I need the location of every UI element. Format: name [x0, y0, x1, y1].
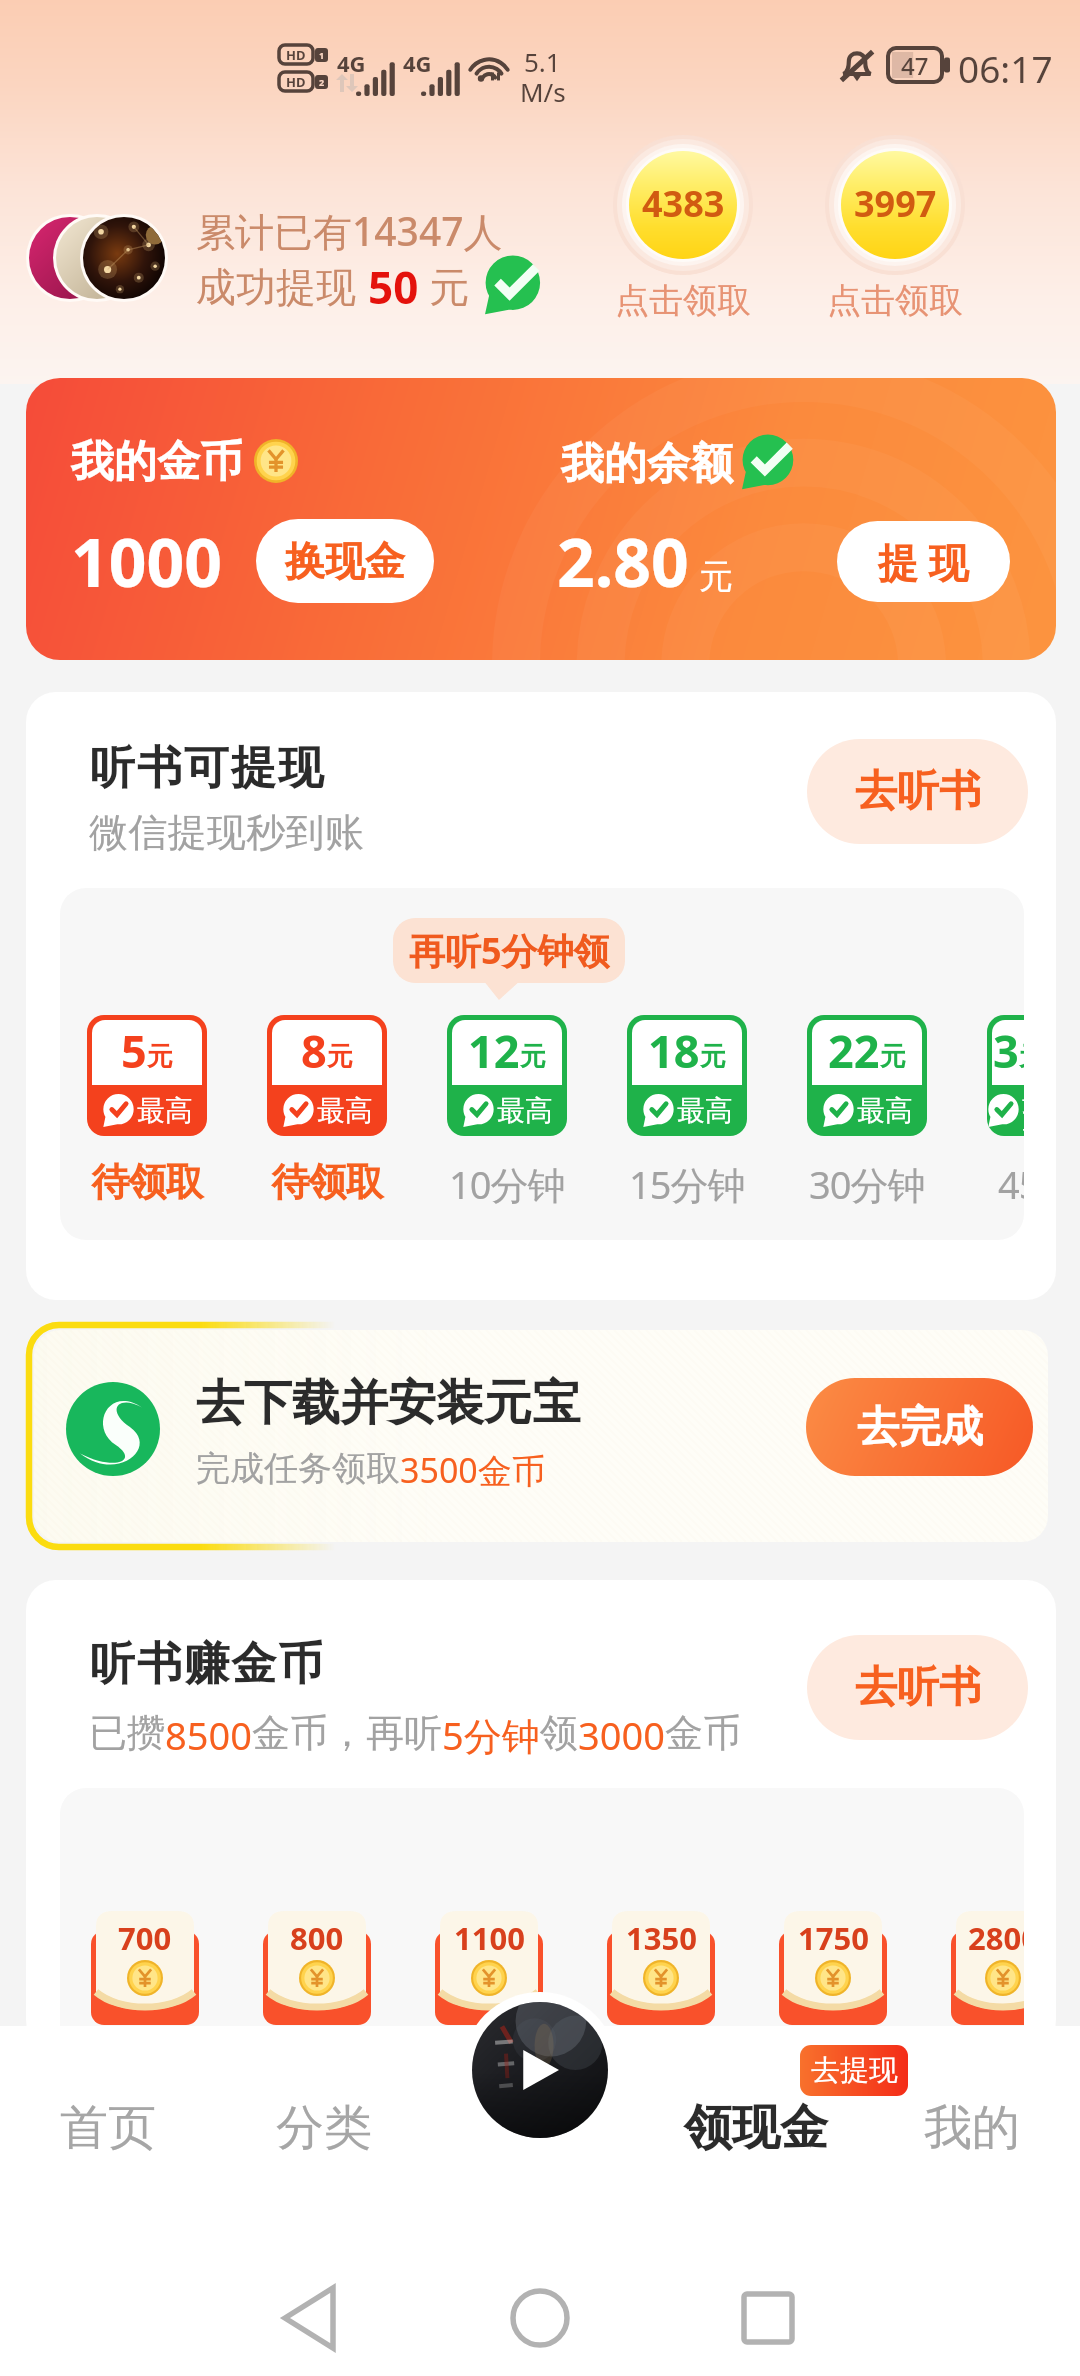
staticText: 去完成 [857, 1401, 983, 1454]
staticText: 元 [1019, 1040, 1024, 1073]
staticText: 4G [403, 48, 432, 78]
staticText: 1100 [454, 1917, 525, 1959]
staticText: 800 [290, 1917, 344, 1959]
button[interactable]: 3 [987, 1015, 1024, 1136]
button[interactable]: 22 [807, 1015, 927, 1136]
staticText: 5分钟 [442, 1709, 540, 1761]
staticText: 我的余额 [561, 437, 733, 491]
button[interactable]: 去听书 [807, 739, 1028, 844]
staticText: 元 [520, 1040, 546, 1073]
staticText: 听书赚金币 [89, 1636, 324, 1693]
staticText: 元 [699, 555, 733, 598]
staticText: 金币 [665, 1709, 741, 1757]
staticText: 微信提现秒到账 [89, 808, 365, 857]
staticText: 2.80 [557, 516, 689, 606]
button[interactable]: 领取 800 金币 [263, 1911, 371, 2025]
button[interactable]: 5 [87, 1015, 207, 1136]
staticText: 点击领取 [827, 279, 963, 322]
staticText: 2 [319, 76, 325, 88]
button[interactable]: 提 现 [837, 521, 1010, 602]
staticText: 我的金币 [71, 435, 243, 489]
button[interactable]: 首页 [0, 2062, 216, 2194]
staticText: HD [286, 73, 306, 91]
button[interactable]: 去听书 [807, 1635, 1028, 1740]
staticText: 1350 [626, 1917, 697, 1959]
button[interactable]: 分类 [216, 2062, 432, 2194]
staticText: 10分钟 [449, 1158, 565, 1210]
staticText: 最高 [857, 1093, 913, 1128]
staticText: 3 [993, 1020, 1019, 1081]
staticText: 18 [648, 1020, 700, 1081]
staticText: 已攒 [89, 1709, 165, 1757]
staticText: 去听书 [855, 1661, 981, 1714]
staticText: 8 [301, 1020, 327, 1081]
staticText: 去下载并安装元宝 [196, 1373, 580, 1433]
staticText: 待领取 [272, 1158, 383, 1206]
staticText: 提 现 [878, 534, 969, 589]
staticText: 元 [327, 1040, 353, 1073]
staticText: 5 [121, 1020, 147, 1081]
button[interactable]: 去完成 [806, 1378, 1033, 1476]
button[interactable]: 点击领取 4383 [613, 134, 753, 276]
staticText: 领 [540, 1709, 578, 1757]
staticText: 最高 [1022, 1085, 1024, 1136]
staticText: 4G [337, 48, 366, 78]
button[interactable]: 8 [267, 1015, 387, 1136]
staticText: 1 [319, 49, 325, 61]
staticText: 12 [468, 1020, 520, 1081]
staticText: 待领取 [92, 1158, 203, 1206]
button[interactable]: 12 [447, 1015, 567, 1136]
staticText: 最高 [497, 1093, 553, 1128]
staticText: 30分钟 [809, 1158, 925, 1210]
staticText: 45 [998, 1158, 1024, 1210]
staticText: 去听书 [855, 765, 981, 818]
staticText: 金币，再听 [252, 1709, 442, 1757]
staticText: 3500金币 [400, 1447, 546, 1493]
staticText: 听书可提现 [89, 740, 324, 797]
staticText: 首页 [60, 2098, 156, 2158]
staticText: 700 [118, 1917, 172, 1959]
button[interactable]: 换现金 [256, 519, 434, 603]
button[interactable]: 去提现 [800, 2045, 908, 2096]
staticText: 1750 [798, 1917, 869, 1959]
staticText: 成功提现 [196, 262, 356, 312]
button[interactable]: 领取 700 金币 [91, 1911, 199, 2025]
staticText: 点击领取 [615, 279, 751, 322]
staticText: 4383 [642, 179, 725, 228]
staticText: 最高 [677, 1093, 733, 1128]
staticText: 换现金 [285, 536, 405, 586]
staticText: 最高 [317, 1093, 373, 1128]
staticText: 3997 [854, 179, 937, 228]
button[interactable]: 我的 [864, 2062, 1080, 2194]
staticText: 1000 [71, 516, 223, 606]
staticText: 2800 [968, 1917, 1024, 1959]
staticText: 完成任务领取 [196, 1447, 400, 1490]
staticText: 去提现 [811, 2052, 898, 2089]
staticText: 3000 [578, 1709, 665, 1761]
staticText: 最高 [137, 1093, 193, 1128]
button[interactable]: 播放 [472, 2002, 608, 2138]
staticText: 累计已有14347人 [196, 204, 503, 257]
staticText: 元 [880, 1040, 906, 1073]
staticText: 领现金 [684, 2098, 828, 2158]
button[interactable]: 领取 2800 金币 [951, 1911, 1024, 2025]
staticText: 8500 [165, 1709, 252, 1761]
button[interactable]: 领现金 [648, 2062, 864, 2194]
button[interactable]: 领取 1750 金币 [779, 1911, 887, 2025]
staticText: 50 [368, 257, 419, 317]
button[interactable]: 领取 1350 金币 [607, 1911, 715, 2025]
staticText: 再听5分钟领 [409, 926, 610, 975]
staticText: 元 [147, 1040, 173, 1073]
staticText: 22 [828, 1020, 880, 1081]
button[interactable]: 18 [627, 1015, 747, 1136]
button[interactable]: 领取 1100 金币 [435, 1911, 543, 2025]
button[interactable]: 点击领取 3997 [825, 134, 965, 276]
staticText: 15分钟 [629, 1158, 745, 1210]
staticText: 元 [429, 262, 469, 312]
staticText: 06:17 [958, 43, 1053, 93]
staticText: 我的 [924, 2098, 1020, 2158]
staticText: M/s [520, 74, 566, 109]
staticText: 元 [700, 1040, 726, 1073]
staticText: 5.1 [524, 44, 561, 79]
staticText: 47 [901, 49, 929, 82]
